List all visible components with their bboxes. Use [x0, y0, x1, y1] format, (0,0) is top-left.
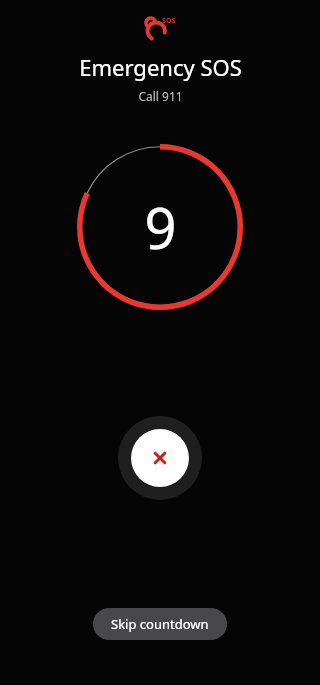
staticText: Emergency SOS [79, 52, 242, 82]
staticText: 9 [144, 189, 177, 265]
button[interactable]: Skip countdown [93, 608, 227, 640]
staticText: Skip countdown [111, 615, 209, 633]
button[interactable]: Cancel emergency call [118, 416, 202, 500]
staticText: Call 911 [138, 88, 183, 104]
staticText: SOS [162, 16, 176, 26]
